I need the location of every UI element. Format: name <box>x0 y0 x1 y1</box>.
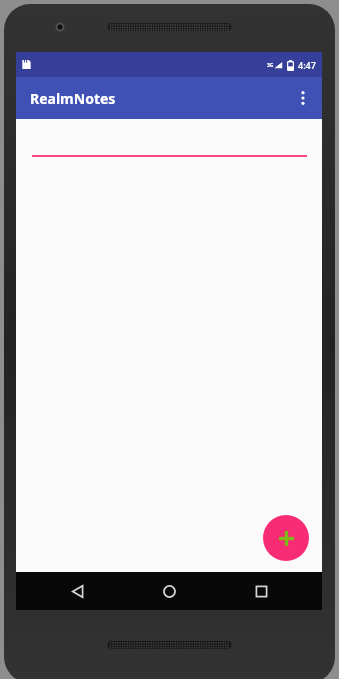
button[interactable]: Add note <box>263 515 309 561</box>
staticText: 4:47 <box>298 59 316 71</box>
staticText: 3G <box>267 62 274 69</box>
staticText: RealmNotes <box>30 89 116 108</box>
button[interactable]: Back <box>46 572 108 610</box>
button[interactable]: More options <box>284 79 322 117</box>
button[interactable]: Recent apps <box>230 572 292 610</box>
button[interactable]: Home <box>138 572 200 610</box>
